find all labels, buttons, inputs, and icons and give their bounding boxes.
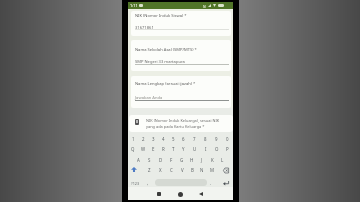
button[interactable]: O: [211, 145, 222, 153]
staticText: P: [226, 146, 229, 152]
staticText: 6: [182, 136, 185, 142]
button[interactable]: [178, 192, 183, 197]
staticText: Nama Sekolah Asal (SMP/MTS) *: [135, 47, 197, 53]
button[interactable]: W: [138, 145, 148, 153]
button[interactable]: T: [168, 145, 178, 153]
button[interactable]: J: [197, 156, 207, 164]
staticText: G: [180, 157, 184, 163]
button[interactable]: R: [158, 145, 168, 153]
staticText: SMP Negeri 33 martapura: [135, 59, 185, 65]
staticText: H: [190, 157, 194, 163]
button[interactable]: Q: [128, 145, 138, 153]
staticText: E: [152, 146, 155, 152]
staticText: 4: [162, 136, 165, 142]
staticText: Jawaban Anda: [135, 95, 163, 101]
staticText: N: [203, 4, 206, 9]
button[interactable]: [131, 40, 231, 71]
staticText: L: [221, 157, 224, 163]
staticText: V: [181, 167, 184, 173]
staticText: Q: [131, 146, 135, 152]
staticText: 0: [226, 136, 229, 142]
staticText: Y: [182, 146, 185, 152]
button[interactable]: 7: [189, 135, 200, 143]
staticText: 3: [152, 136, 155, 142]
button[interactable]: S: [144, 156, 155, 164]
staticText: O: [215, 146, 219, 152]
staticText: 9: [215, 136, 218, 142]
button[interactable]: [199, 192, 203, 196]
button[interactable]: M: [207, 166, 217, 174]
button[interactable]: Y: [178, 145, 189, 153]
staticText: T: [172, 146, 175, 152]
button[interactable]: 4: [158, 135, 168, 143]
staticText: M: [210, 167, 214, 173]
button[interactable]: 5: [168, 135, 178, 143]
staticText: N: [200, 167, 204, 173]
button[interactable]: 3: [148, 135, 158, 143]
button[interactable]: P: [222, 145, 233, 153]
staticText: K: [211, 157, 214, 163]
button[interactable]: 8: [200, 135, 211, 143]
button[interactable]: G: [177, 156, 187, 164]
staticText: 2: [142, 136, 145, 142]
button[interactable]: L: [217, 156, 227, 164]
button[interactable]: [129, 115, 233, 132]
staticText: yang ada pada Kartu Keluarga *: [146, 124, 205, 129]
button[interactable]: H: [187, 156, 197, 164]
staticText: NIK (Nomor Induk Keluarga), sesuai NIK: [146, 118, 220, 123]
staticText: 5: [172, 136, 175, 142]
staticText: R: [162, 146, 165, 152]
staticText: Nama Lengkap (sesuai ijazah) *: [135, 81, 196, 87]
staticText: U: [193, 146, 197, 152]
button[interactable]: 2: [138, 135, 148, 143]
staticText: ?123: [131, 181, 140, 186]
staticText: S: [148, 157, 151, 163]
button[interactable]: A: [133, 156, 144, 164]
button[interactable]: N: [197, 166, 207, 174]
button[interactable]: 1: [128, 135, 138, 143]
staticText: .: [210, 180, 212, 186]
button[interactable]: E: [148, 145, 158, 153]
staticText: NIK (Nomor Induk Siswa) *: [135, 13, 187, 19]
button[interactable]: 6: [178, 135, 189, 143]
button[interactable]: D: [155, 156, 166, 164]
staticText: D: [159, 157, 163, 163]
staticText: J: [201, 157, 203, 163]
button[interactable]: U: [189, 145, 200, 153]
button[interactable]: [131, 76, 231, 108]
button[interactable]: [131, 11, 231, 36]
staticText: 8: [204, 136, 207, 142]
button[interactable]: V: [177, 166, 187, 174]
button[interactable]: 9: [211, 135, 222, 143]
button[interactable]: I: [200, 145, 211, 153]
staticText: F: [170, 157, 173, 163]
button[interactable]: [131, 167, 137, 172]
staticText: 7: [193, 136, 196, 142]
staticText: 1:11: [130, 3, 138, 8]
staticText: B: [191, 167, 194, 173]
staticText: Z: [148, 167, 151, 173]
staticText: X: [159, 167, 162, 173]
button[interactable]: F: [166, 156, 177, 164]
staticText: 31671861: [135, 25, 154, 31]
button[interactable]: 0: [222, 135, 233, 143]
button[interactable]: K: [207, 156, 217, 164]
button[interactable]: B: [187, 166, 197, 174]
button[interactable]: [223, 181, 229, 186]
button[interactable]: X: [155, 166, 166, 174]
staticText: A: [137, 157, 140, 163]
staticText: I: [205, 146, 207, 152]
staticText: 1: [132, 136, 135, 142]
button[interactable]: Z: [144, 166, 155, 174]
button[interactable]: [157, 192, 161, 196]
staticText: ,: [147, 180, 149, 186]
button[interactable]: [223, 168, 229, 173]
staticText: W: [141, 146, 146, 152]
staticText: C: [170, 167, 173, 173]
button[interactable]: C: [166, 166, 177, 174]
